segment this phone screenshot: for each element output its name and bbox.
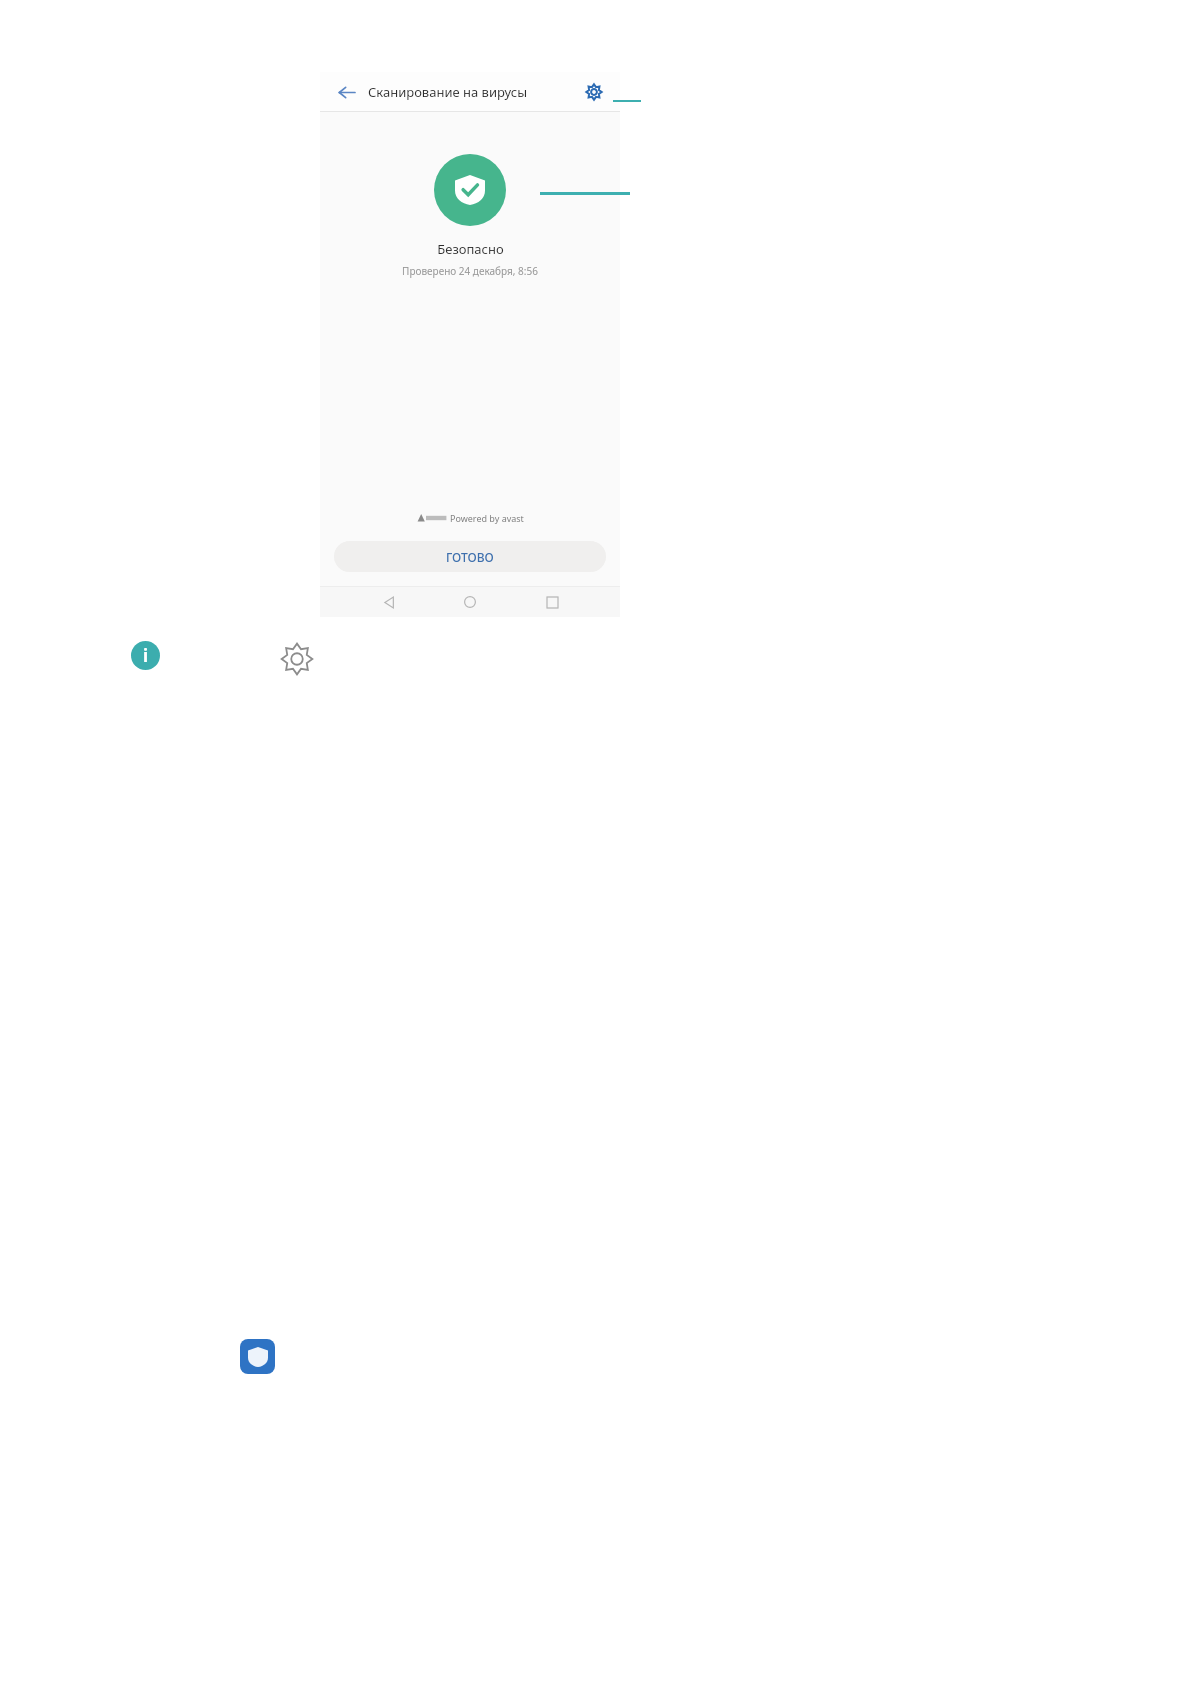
button[interactable]: Home <box>457 589 483 615</box>
staticText: Безопасно <box>437 240 504 258</box>
button[interactable]: Recents <box>539 589 565 615</box>
staticText: i <box>143 644 149 667</box>
button[interactable]: ГОТОВО <box>334 541 606 572</box>
button[interactable]: Security app <box>240 1339 275 1374</box>
staticText: Проверено 24 декабря, 8:56 <box>402 264 538 278</box>
button[interactable]: Settings <box>281 643 313 675</box>
staticText: ГОТОВО <box>446 549 494 565</box>
button[interactable]: Information <box>131 641 160 670</box>
button[interactable]: Back <box>334 80 358 104</box>
button[interactable]: Back <box>376 589 402 615</box>
staticText: Powered by avast <box>450 512 524 524</box>
button[interactable]: Settings <box>582 80 606 104</box>
staticText: Сканирование на вирусы <box>368 83 528 101</box>
